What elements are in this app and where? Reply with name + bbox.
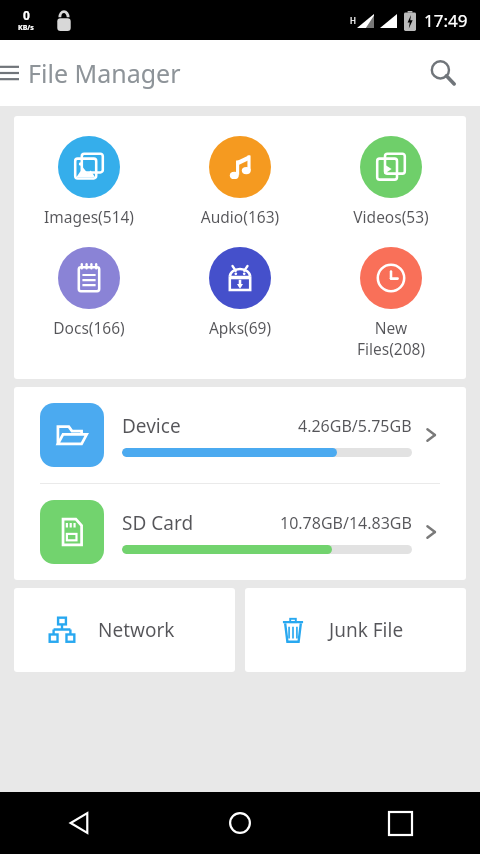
staticText: 17:49 <box>424 9 468 32</box>
button[interactable]: Recent apps <box>320 792 480 854</box>
staticText: Images(514) <box>37 206 141 227</box>
button[interactable]: Back <box>0 792 160 854</box>
button[interactable]: Images(514) <box>14 134 164 229</box>
staticText: 0 <box>23 7 30 23</box>
button[interactable]: New Files(208) <box>315 245 466 361</box>
button[interactable]: Apks(69) <box>164 245 315 340</box>
staticText: Audio(163) <box>188 206 292 227</box>
button[interactable]: Device <box>14 387 466 483</box>
staticText: Apks(69) <box>188 317 292 338</box>
staticText: Docs(166) <box>37 317 141 338</box>
staticText: KB/s <box>18 23 34 33</box>
button[interactable]: Docs(166) <box>14 245 164 340</box>
button[interactable]: Network <box>14 588 235 672</box>
staticText: Network <box>98 617 175 643</box>
button[interactable]: Junk File <box>245 588 466 672</box>
staticText: File Manager <box>28 56 181 90</box>
button[interactable]: Search <box>420 50 466 96</box>
staticText: New Files(208) <box>339 317 443 359</box>
button[interactable]: Audio(163) <box>164 134 315 229</box>
staticText: 10.78GB/14.83GB <box>280 512 412 534</box>
staticText: Device <box>122 413 181 439</box>
button[interactable]: Home <box>160 792 320 854</box>
button[interactable]: Menu <box>0 51 30 95</box>
button[interactable]: SD Card <box>14 484 466 580</box>
button[interactable]: Videos(53) <box>315 134 466 229</box>
staticText: SD Card <box>122 510 194 536</box>
staticText: 4.26GB/5.75GB <box>298 415 412 437</box>
staticText: Videos(53) <box>339 206 443 227</box>
staticText: Junk File <box>329 617 404 643</box>
staticText: H <box>350 15 356 26</box>
